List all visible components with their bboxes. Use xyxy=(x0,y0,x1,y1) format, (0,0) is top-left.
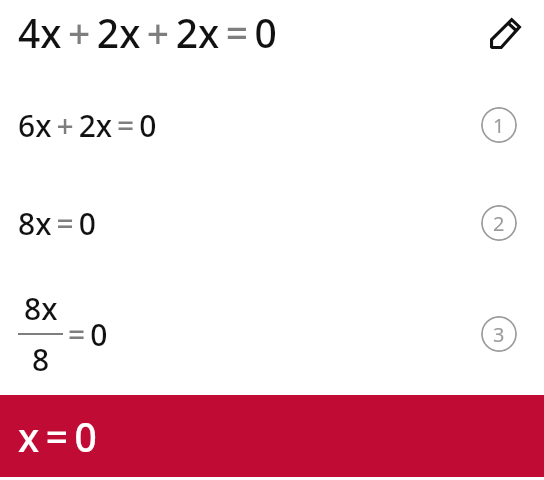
staticText: = 0 xyxy=(63,314,108,355)
button[interactable]: Edit equation xyxy=(484,12,526,54)
staticText: 8x = 0 xyxy=(18,203,96,244)
button[interactable]: 6x + 2x = 0 xyxy=(0,76,544,174)
staticText: 1 xyxy=(493,112,505,139)
button[interactable]: Explain step 3 xyxy=(481,316,517,352)
button[interactable]: x = 0 xyxy=(0,395,544,477)
staticText: 3 xyxy=(493,321,505,348)
button[interactable]: Explain step 1 xyxy=(481,107,517,143)
staticText: 8x xyxy=(24,288,58,329)
button[interactable]: Explain step 2 xyxy=(481,205,517,241)
button[interactable]: 8x xyxy=(0,272,544,395)
staticText: x = 0 xyxy=(18,410,97,463)
staticText: 2 xyxy=(493,210,505,237)
staticText: 8 xyxy=(32,339,50,380)
staticText: 6x + 2x = 0 xyxy=(18,105,157,146)
staticText: 4x + 2x + 2x = 0 xyxy=(18,6,277,59)
button[interactable]: 8x = 0 xyxy=(0,174,544,272)
button[interactable]: 4x + 2x + 2x = 0 xyxy=(0,0,544,76)
